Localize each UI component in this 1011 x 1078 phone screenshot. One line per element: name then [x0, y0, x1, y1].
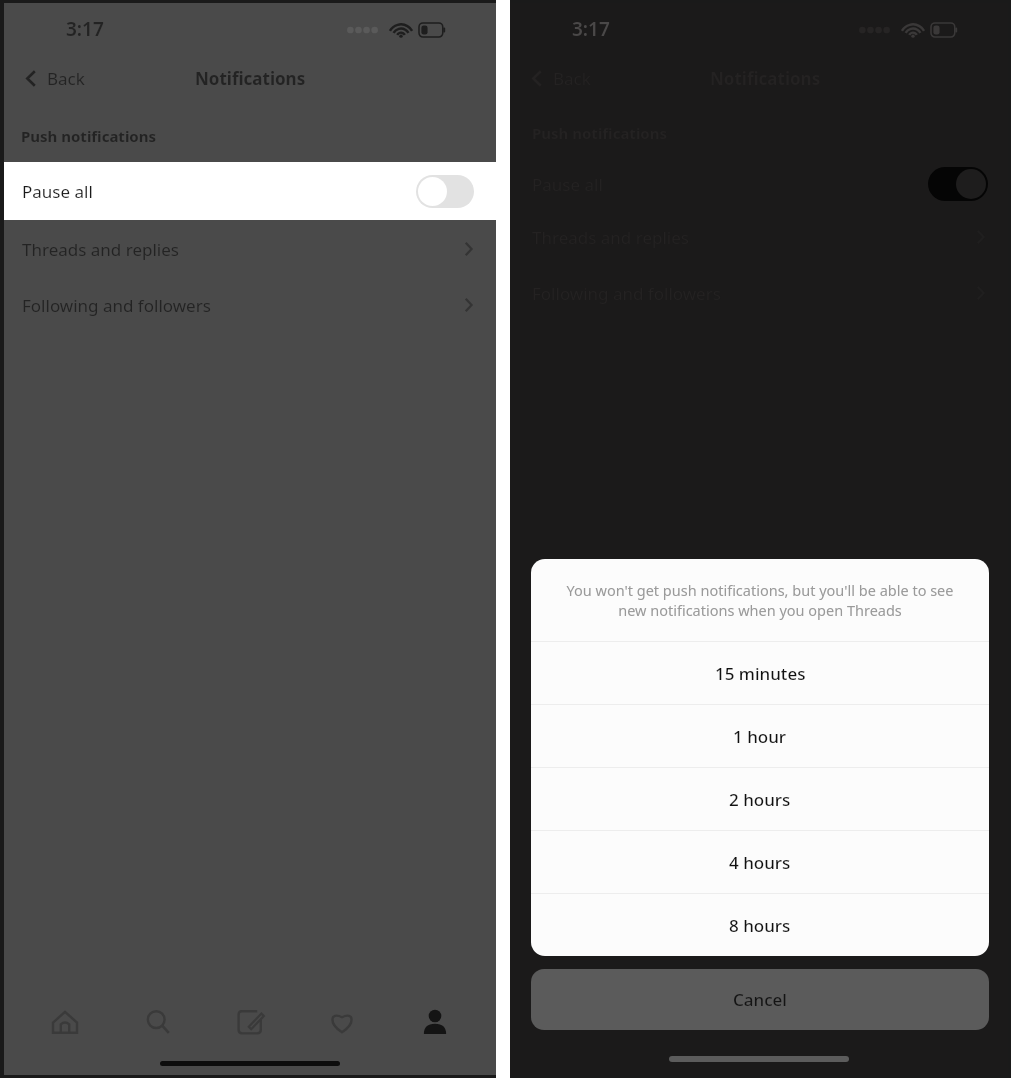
staticText: Cancel [733, 988, 787, 1011]
other: Pause all toggle [416, 175, 474, 208]
button[interactable]: 2 hours [531, 768, 989, 830]
button[interactable]: 1 hour [531, 705, 989, 767]
staticText: 3:17 [66, 16, 104, 42]
button[interactable]: Cancel [531, 969, 989, 1030]
button[interactable]: Pause all [4, 162, 496, 220]
button[interactable]: Threads and replies [4, 221, 496, 277]
staticText: Following and followers [22, 294, 211, 317]
staticText: 2 hours [729, 788, 791, 811]
staticText: Threads and replies [22, 238, 179, 261]
staticText: 1 hour [733, 725, 787, 748]
button[interactable]: Back [20, 63, 89, 94]
staticText: 15 minutes [715, 662, 806, 685]
button[interactable]: Following and followers [4, 277, 496, 333]
staticText: You won't get push notifications, but yo… [553, 580, 967, 620]
staticText: Pause all [22, 180, 93, 203]
staticText: Back [47, 67, 85, 90]
button[interactable]: 4 hours [531, 831, 989, 893]
staticText: Push notifications [21, 126, 157, 146]
button[interactable]: Activity [311, 996, 373, 1048]
staticText: 3:17 [572, 16, 610, 42]
staticText: Notifications [195, 67, 306, 90]
staticText: Notifications [710, 67, 821, 90]
button[interactable]: Search [127, 996, 189, 1048]
staticText: 8 hours [729, 914, 791, 937]
button[interactable]: Profile [404, 996, 466, 1048]
staticText: 4 hours [729, 851, 791, 874]
button[interactable]: 15 minutes [531, 642, 989, 704]
button[interactable]: Create [219, 996, 281, 1048]
button[interactable]: Home [34, 996, 96, 1048]
button[interactable]: 8 hours [531, 894, 989, 956]
